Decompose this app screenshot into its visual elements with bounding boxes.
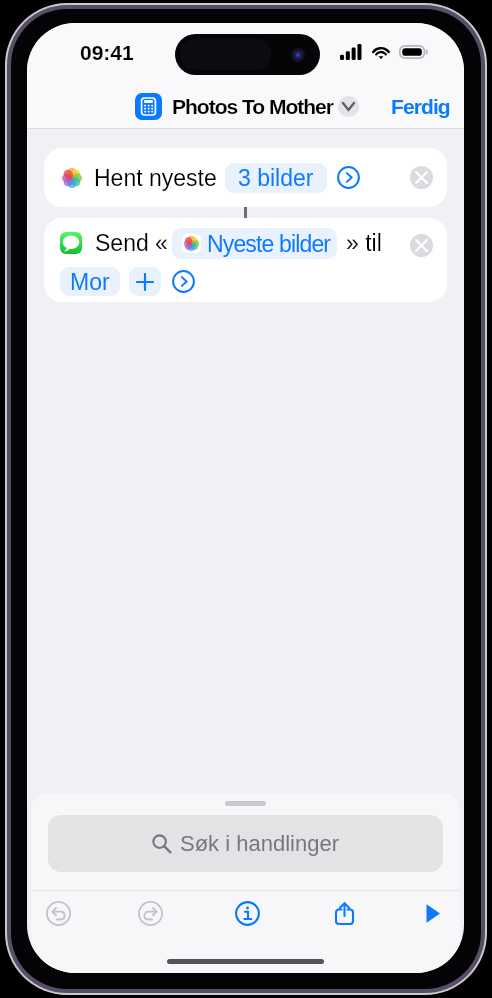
button[interactable]: Redo — [128, 891, 172, 936]
button[interactable]: Remove action — [410, 234, 433, 257]
staticText: 09:41 — [80, 41, 134, 64]
staticText: Hent nyeste — [94, 165, 217, 191]
button[interactable]: Undo — [36, 891, 80, 936]
staticText: Mor — [70, 269, 110, 295]
button[interactable]: Send « — [44, 218, 447, 302]
button[interactable]: Show action options — [337, 166, 360, 189]
button[interactable]: Add recipient — [129, 267, 161, 296]
button[interactable]: Søk i handlinger — [48, 815, 443, 872]
button[interactable]: Ferdig — [375, 86, 464, 127]
staticText: 3 bilder — [238, 165, 314, 191]
staticText: Photos To Mother — [172, 95, 333, 118]
button[interactable]: Details — [225, 891, 269, 936]
button[interactable]: Hent nyeste — [44, 148, 447, 207]
button[interactable]: 3 bilder — [225, 163, 327, 193]
button[interactable]: Show recipient options — [172, 270, 195, 293]
button[interactable]: Share — [322, 891, 366, 936]
button[interactable]: Remove action — [410, 166, 433, 189]
staticText: Nyeste bilder — [207, 231, 331, 257]
staticText: Søk i handlinger — [180, 831, 339, 856]
button[interactable]: Run shortcut — [410, 891, 454, 936]
button[interactable]: Show shortcut details — [338, 96, 359, 117]
staticText: Send « — [95, 230, 168, 256]
button[interactable]: Mor — [60, 267, 120, 296]
staticText: Ferdig — [391, 95, 450, 118]
button[interactable]: Nyeste bilder — [172, 228, 337, 259]
staticText: » til — [346, 230, 382, 256]
